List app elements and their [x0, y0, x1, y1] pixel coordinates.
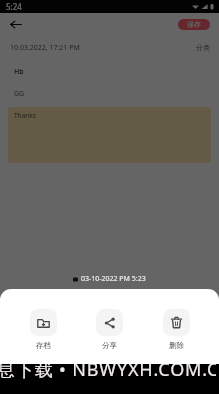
staticText: 删除 [169, 341, 184, 350]
other: Archive [30, 309, 57, 336]
staticText: 03-10-2022 PM 5:23 [81, 274, 146, 284]
staticText: Thanks [14, 111, 36, 120]
button[interactable]: 分类 [196, 43, 210, 52]
staticText: 10.03.2022, 17:21 PM [10, 43, 80, 53]
other: Delete [163, 309, 190, 336]
button[interactable]: Back [5, 14, 25, 34]
staticText: 分享 [102, 341, 117, 350]
button[interactable]: Share [86, 309, 133, 350]
button[interactable]: Delete [153, 309, 200, 350]
staticText: GG [14, 89, 25, 99]
button[interactable]: Archive [20, 309, 67, 350]
button[interactable]: 保存 [178, 19, 210, 30]
staticText: Hb [14, 67, 24, 77]
staticText: 息下载 • NBWYXH.COM.C [0, 364, 216, 382]
other: Share [96, 309, 123, 336]
staticText: 5:24 [6, 1, 22, 12]
staticText: 存档 [36, 341, 51, 350]
staticText: 保存 [187, 20, 201, 29]
staticText: 分类 [196, 43, 210, 52]
